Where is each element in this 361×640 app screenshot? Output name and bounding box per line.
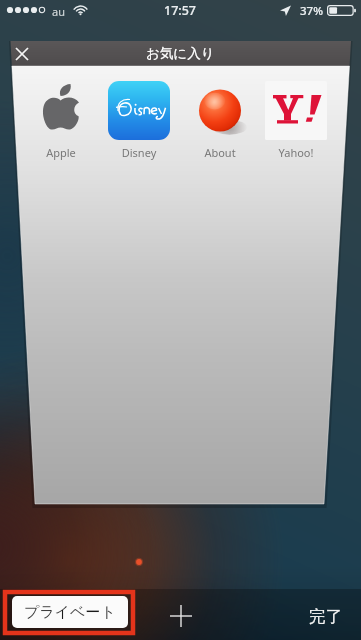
- button[interactable]: Disney: [108, 81, 170, 160]
- button[interactable]: About: [189, 81, 251, 160]
- button[interactable]: プライベート: [12, 596, 128, 628]
- staticText: About: [189, 145, 251, 160]
- button[interactable]: Apple: [30, 81, 92, 160]
- staticText: Apple: [30, 145, 92, 160]
- staticText: 17:57: [164, 2, 197, 19]
- staticText: Disney: [108, 145, 170, 160]
- staticText: 37%: [300, 3, 323, 19]
- staticText: Yahoo!: [265, 145, 327, 160]
- button[interactable]: 完了: [295, 598, 356, 635]
- staticText: 完了: [309, 606, 342, 627]
- button[interactable]: New tab: [159, 594, 203, 638]
- staticText: プライベート: [24, 603, 116, 622]
- button[interactable]: Yahoo!: [265, 81, 327, 160]
- staticText: お気に入り: [146, 45, 215, 62]
- staticText: au: [52, 4, 65, 19]
- button[interactable]: Close favorites: [10, 42, 34, 66]
